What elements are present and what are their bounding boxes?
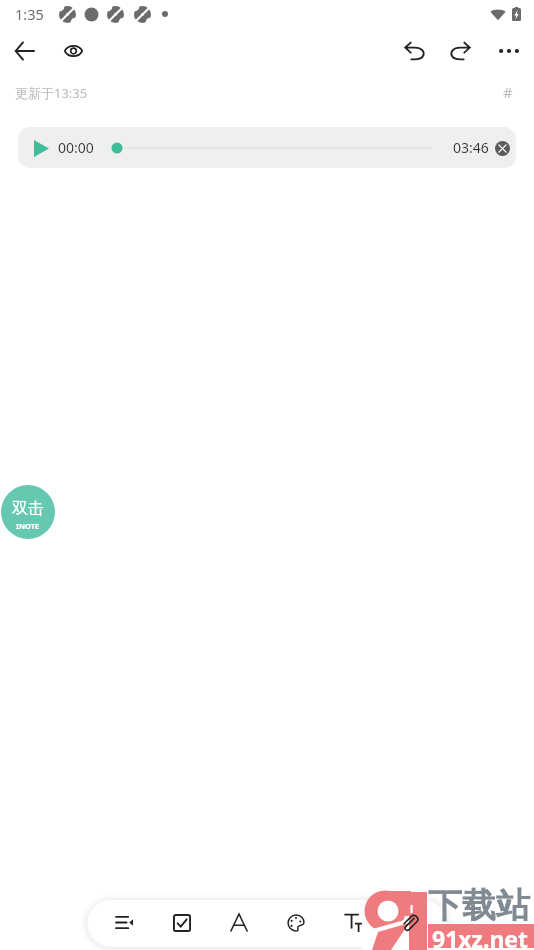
button[interactable]: Font size [324, 900, 381, 945]
button[interactable]: Play [18, 127, 516, 168]
staticText: 1:35 [15, 4, 44, 24]
button[interactable]: Attachment [381, 900, 438, 945]
staticText: 更新于13:35 [15, 84, 88, 102]
button[interactable]: Colour palette [267, 900, 324, 945]
button[interactable]: List [96, 900, 153, 945]
button[interactable]: Undo [394, 31, 434, 71]
button[interactable]: Redo [440, 31, 480, 71]
staticText: # [503, 82, 513, 102]
button[interactable]: Tag [493, 77, 523, 107]
staticText: INOTE [16, 521, 40, 531]
button[interactable]: Checkbox [153, 900, 210, 945]
button[interactable]: Preview [53, 31, 93, 71]
button[interactable]: More options [489, 31, 529, 71]
staticText: 双击 [12, 499, 44, 519]
staticText: 下载站 [428, 884, 530, 927]
button[interactable]: Back [4, 31, 44, 71]
button[interactable]: Text style [210, 900, 267, 945]
button[interactable]: Close audio [490, 136, 514, 160]
staticText: 91xz.net [432, 923, 529, 950]
staticText: 00:00 [58, 138, 94, 157]
button[interactable]: 双击 INOTE [1, 485, 55, 539]
staticText: 03:46 [453, 138, 489, 157]
button[interactable]: Play [26, 133, 56, 163]
